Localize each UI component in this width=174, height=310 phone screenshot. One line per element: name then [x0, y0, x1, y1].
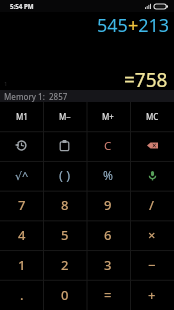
- button[interactable]: 9: [86, 190, 130, 220]
- button[interactable]: 8: [43, 190, 86, 220]
- staticText: 6: [104, 226, 112, 244]
- staticText: 5:54 PM: [10, 2, 34, 10]
- staticText: −: [148, 256, 156, 274]
- staticText: 4: [18, 226, 26, 244]
- button[interactable]: Voice input: [130, 160, 174, 190]
- staticText: .: [20, 286, 24, 304]
- staticText: M−: [59, 111, 71, 122]
- button[interactable]: 4: [0, 220, 43, 250]
- staticText: =758: [124, 67, 168, 93]
- button[interactable]: Clipboard: [43, 131, 86, 160]
- staticText: ×: [148, 226, 156, 244]
- staticText: ( ): [59, 166, 71, 184]
- button[interactable]: Backspace: [130, 131, 174, 160]
- button[interactable]: 6: [86, 220, 130, 250]
- button[interactable]: 1: [0, 250, 43, 280]
- staticText: 5: [61, 226, 69, 244]
- staticText: 0: [61, 286, 69, 304]
- staticText: 1: [18, 256, 26, 274]
- staticText: %: [103, 167, 113, 183]
- button[interactable]: −: [130, 250, 174, 280]
- button[interactable]: .: [0, 280, 43, 310]
- staticText: 545+213: [97, 13, 170, 38]
- button[interactable]: %: [86, 160, 130, 190]
- button[interactable]: 0: [43, 280, 86, 310]
- staticText: M+: [102, 111, 114, 122]
- button[interactable]: M+: [86, 102, 130, 131]
- staticText: C: [104, 138, 112, 154]
- button[interactable]: 3: [86, 250, 130, 280]
- staticText: M1: [16, 111, 28, 122]
- button[interactable]: Memory 1: 2857: [0, 90, 174, 102]
- button[interactable]: 2: [43, 250, 86, 280]
- staticText: 8: [61, 196, 69, 214]
- staticText: MC: [146, 111, 159, 122]
- staticText: Memory 1: 2857: [4, 91, 68, 102]
- staticText: 1: [4, 80, 8, 88]
- button[interactable]: +: [130, 280, 174, 310]
- button[interactable]: History: [0, 131, 43, 160]
- button[interactable]: ( ): [43, 160, 86, 190]
- button[interactable]: C: [86, 131, 130, 160]
- button[interactable]: /: [130, 190, 174, 220]
- staticText: 2: [61, 256, 69, 274]
- button[interactable]: MC: [130, 102, 174, 131]
- button[interactable]: M1: [0, 102, 43, 131]
- staticText: √^: [15, 168, 29, 183]
- button[interactable]: M−: [43, 102, 86, 131]
- staticText: 7: [18, 196, 26, 214]
- button[interactable]: =: [86, 280, 130, 310]
- staticText: 3: [104, 256, 112, 274]
- button[interactable]: 7: [0, 190, 43, 220]
- staticText: +: [148, 286, 156, 304]
- button[interactable]: 5: [43, 220, 86, 250]
- staticText: 9: [104, 196, 112, 214]
- staticText: /: [149, 196, 155, 214]
- button[interactable]: √^: [0, 160, 43, 190]
- staticText: =: [104, 286, 112, 304]
- button[interactable]: ×: [130, 220, 174, 250]
